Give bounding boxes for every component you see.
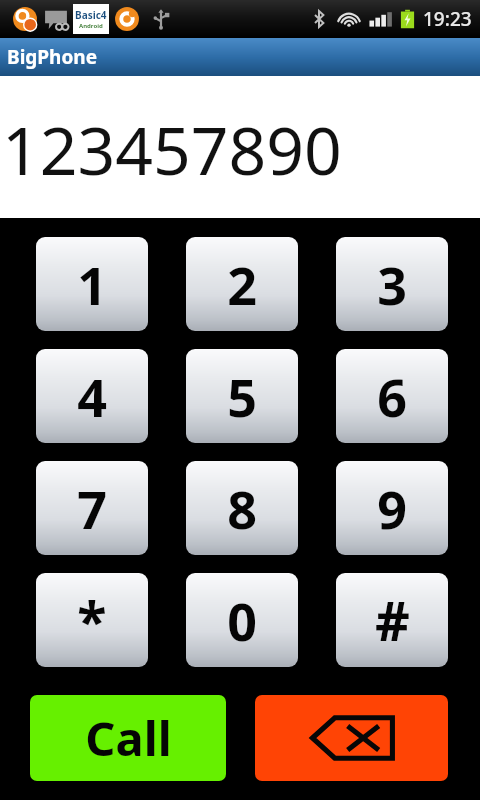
button[interactable]: 5 [186,349,298,443]
staticText: 5 [227,361,257,432]
staticText: 6 [377,361,407,432]
staticText: BigPhone [7,44,98,70]
staticText: Basic4 [75,8,107,22]
button[interactable]: Call [30,695,226,781]
button[interactable]: Backspace [255,695,448,781]
staticText: * [77,583,107,657]
button[interactable]: 2 [186,237,298,331]
button[interactable]: * [36,573,148,667]
button[interactable]: 7 [36,461,148,555]
staticText: 2 [227,249,257,320]
staticText: 123457890 [2,104,342,194]
staticText: Android [79,22,103,30]
staticText: 3 [377,249,407,320]
button[interactable]: 6 [336,349,448,443]
staticText: 1 [77,249,107,320]
button[interactable]: 0 [186,573,298,667]
staticText: 19:23 [423,6,472,32]
staticText: Call [85,706,172,770]
staticText: 4 [77,361,107,432]
button[interactable]: 1 [36,237,148,331]
staticText: 8 [227,473,257,544]
staticText: 9 [377,473,407,544]
staticText: # [375,583,410,657]
staticText: 0 [227,585,257,656]
button[interactable]: 8 [186,461,298,555]
button[interactable]: 9 [336,461,448,555]
button[interactable]: 4 [36,349,148,443]
staticText: 7 [77,473,107,544]
button[interactable]: 3 [336,237,448,331]
button[interactable]: # [336,573,448,667]
